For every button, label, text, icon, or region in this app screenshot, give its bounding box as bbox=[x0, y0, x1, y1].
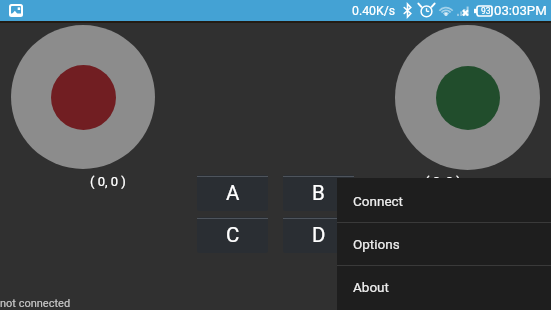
other: Screenshot bbox=[9, 4, 23, 17]
staticText: B bbox=[312, 181, 325, 205]
button[interactable]: About bbox=[337, 266, 551, 310]
button[interactable]: B bbox=[283, 175, 354, 211]
staticText: ( 0, 0 ) bbox=[425, 174, 461, 189]
button[interactable]: Connect bbox=[337, 178, 551, 222]
button[interactable]: Left joystick bbox=[11, 25, 155, 169]
staticText: Connect bbox=[353, 193, 404, 209]
button[interactable]: Options bbox=[337, 223, 551, 265]
staticText: 03:03PM bbox=[494, 3, 547, 18]
button[interactable]: Right joystick bbox=[395, 25, 540, 170]
staticText: Options bbox=[353, 236, 400, 252]
staticText: A bbox=[226, 181, 240, 205]
staticText: C bbox=[226, 223, 240, 247]
staticText: 0.40K/s bbox=[352, 4, 396, 18]
button[interactable]: A bbox=[197, 175, 268, 211]
button[interactable]: D bbox=[283, 217, 354, 253]
staticText: 93 bbox=[481, 6, 491, 16]
button[interactable]: C bbox=[197, 217, 268, 253]
staticText: D bbox=[312, 223, 326, 247]
staticText: ( 0, 0 ) bbox=[90, 174, 126, 189]
staticText: About bbox=[353, 279, 389, 295]
staticText: not connected bbox=[0, 297, 71, 310]
